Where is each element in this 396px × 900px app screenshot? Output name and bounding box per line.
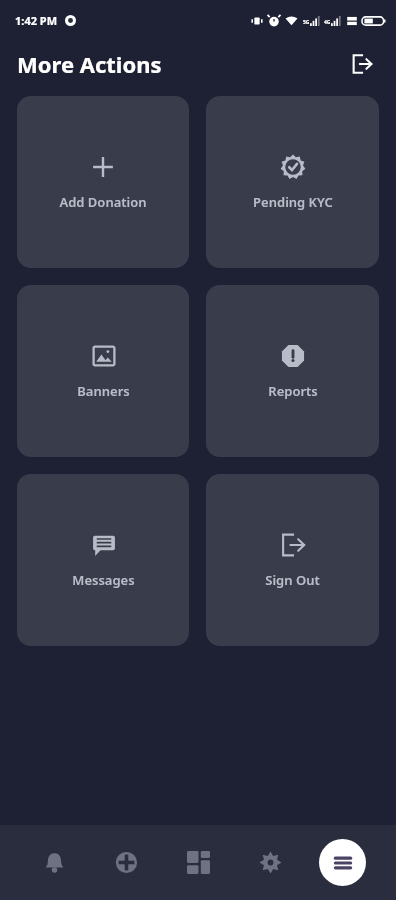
staticText: Sign Out <box>265 571 320 589</box>
staticText: Messages <box>72 571 135 589</box>
button[interactable]: Dashboard <box>162 825 234 900</box>
staticText: 4G <box>324 19 331 26</box>
staticText: 1:42 PM <box>15 13 58 28</box>
staticText: Pending KYC <box>253 193 333 211</box>
button[interactable]: Reports <box>206 285 379 457</box>
button[interactable]: Messages <box>17 474 189 646</box>
staticText: 5G <box>303 19 310 26</box>
button[interactable]: Sign out <box>342 44 382 84</box>
button[interactable]: Settings <box>234 825 306 900</box>
staticText: Banners <box>77 382 130 400</box>
button[interactable]: Banners <box>17 285 189 457</box>
button[interactable]: Add Donation <box>17 96 189 268</box>
staticText: Add Donation <box>59 193 147 211</box>
staticText: More Actions <box>17 49 162 79</box>
button[interactable]: Donations <box>90 825 162 900</box>
button[interactable]: More <box>319 839 366 886</box>
staticText: Reports <box>268 382 318 400</box>
button[interactable]: Notifications <box>18 825 90 900</box>
button[interactable]: Sign Out <box>206 474 379 646</box>
button[interactable]: Pending KYC <box>206 96 379 268</box>
